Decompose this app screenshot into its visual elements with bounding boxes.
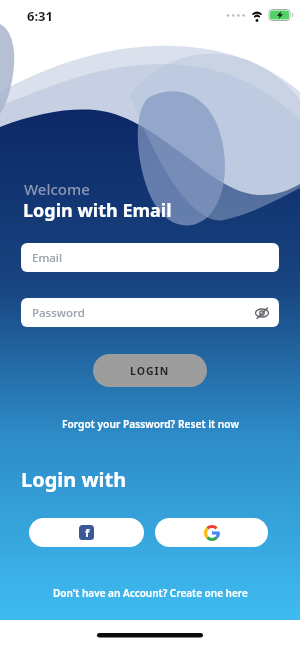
staticText: Login with Email bbox=[23, 198, 172, 223]
button[interactable]: Forgot your Password? Reset it now bbox=[0, 417, 300, 431]
button[interactable]: Password bbox=[21, 298, 279, 327]
staticText: LOGIN bbox=[130, 364, 170, 378]
staticText: Forgot your Password? Reset it now bbox=[62, 417, 239, 431]
staticText: Email bbox=[32, 250, 63, 266]
button[interactable]: Email bbox=[21, 243, 279, 272]
button[interactable]: Don't have an Account? Create one here bbox=[0, 586, 300, 600]
staticText: Welcome bbox=[24, 179, 90, 199]
button[interactable] bbox=[155, 518, 268, 547]
staticText: f bbox=[85, 525, 90, 540]
button[interactable]: f bbox=[29, 518, 144, 547]
staticText: Login with bbox=[21, 466, 127, 493]
button[interactable]: LOGIN bbox=[93, 354, 207, 387]
staticText: 6:31 bbox=[27, 7, 53, 25]
staticText: Don't have an Account? Create one here bbox=[53, 586, 248, 600]
staticText: Password bbox=[32, 305, 85, 321]
